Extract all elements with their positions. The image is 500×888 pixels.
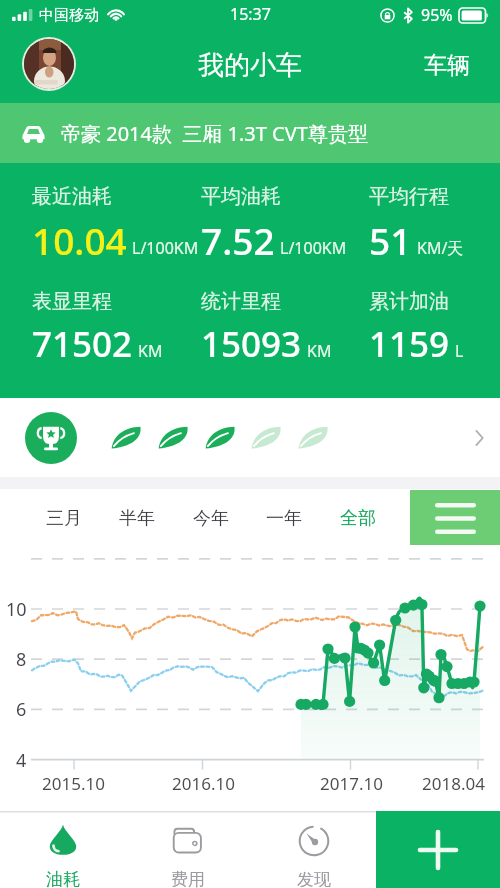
staticText: 费用 — [171, 869, 205, 888]
button[interactable]: 今年 — [183, 495, 239, 541]
staticText: 全部 — [340, 507, 376, 530]
button[interactable]: Add record — [376, 811, 500, 888]
staticText: 2017.10 — [320, 772, 383, 795]
staticText: 统计里程 — [201, 289, 281, 314]
staticText: 95% — [421, 4, 453, 26]
staticText: 6 — [16, 697, 27, 722]
staticText: 15:37 — [230, 3, 271, 25]
staticText: 平均油耗 — [201, 184, 281, 209]
staticText: 中国移动 — [39, 6, 99, 25]
staticText: 我的小车 — [198, 49, 302, 82]
staticText: L/100KM — [280, 237, 347, 259]
button[interactable]: 全部 — [330, 495, 386, 541]
button[interactable]: Profile — [22, 37, 76, 91]
staticText: 51 — [369, 215, 412, 265]
button[interactable] — [0, 398, 500, 477]
button[interactable]: 半年 — [109, 495, 165, 541]
staticText: 15093 — [201, 320, 302, 368]
staticText: 帝豪 2014款 三厢 1.3T CVT尊贵型 — [61, 120, 368, 147]
staticText: 平均行程 — [369, 184, 449, 209]
staticText: 发现 — [297, 869, 331, 888]
staticText: L — [455, 340, 464, 362]
staticText: 7.52 — [201, 215, 275, 265]
staticText: 累计加油 — [369, 289, 449, 314]
staticText: 半年 — [119, 507, 155, 530]
staticText: 三月 — [46, 507, 82, 530]
staticText: 最近油耗 — [32, 184, 112, 209]
button[interactable]: 一年 — [256, 495, 312, 541]
staticText: 2016.10 — [172, 772, 235, 795]
staticText: 10.04 — [32, 215, 127, 265]
staticText: 10 — [6, 597, 27, 622]
button[interactable]: 车辆 — [412, 44, 482, 86]
staticText: KM/天 — [417, 237, 464, 259]
button[interactable]: 发现 — [251, 811, 376, 888]
staticText: 表显里程 — [32, 289, 112, 314]
button[interactable]: Menu — [410, 490, 500, 545]
staticText: KM — [138, 340, 163, 362]
staticText: 2018.04 — [422, 772, 485, 795]
staticText: 71502 — [32, 320, 133, 368]
staticText: 8 — [16, 647, 27, 672]
button[interactable]: 费用 — [125, 811, 250, 888]
staticText: 2015.10 — [42, 772, 105, 795]
staticText: 车辆 — [424, 51, 470, 80]
staticText: 今年 — [193, 507, 229, 530]
staticText: 一年 — [266, 507, 302, 530]
button[interactable]: 油耗 — [0, 811, 125, 888]
button[interactable]: 三月 — [36, 495, 92, 541]
staticText: 1159 — [369, 320, 450, 368]
staticText: 油耗 — [46, 869, 80, 888]
staticText: KM — [307, 340, 332, 362]
staticText: 4 — [16, 748, 27, 773]
staticText: L/100KM — [132, 237, 199, 259]
